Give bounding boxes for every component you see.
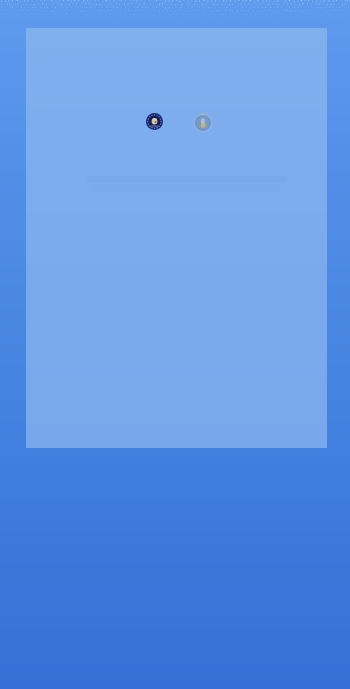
button[interactable] [26, 28, 327, 448]
button[interactable]: Home team crest [146, 113, 163, 130]
button[interactable]: Away team crest [194, 111, 212, 131]
